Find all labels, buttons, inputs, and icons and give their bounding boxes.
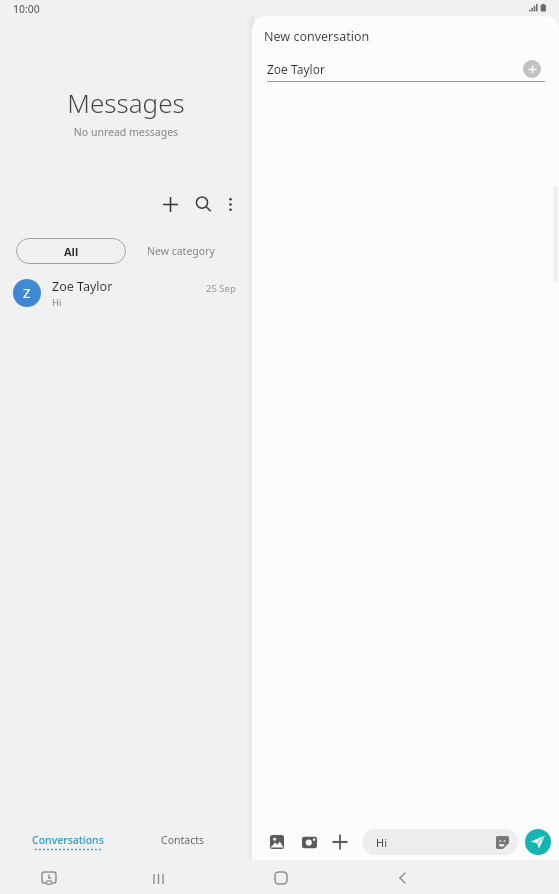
staticText: Messages (0, 85, 252, 120)
button[interactable]: Z (0, 273, 252, 313)
staticText: Hi (376, 835, 387, 850)
staticText: Zoe Taylor (52, 278, 113, 295)
staticText: Z (23, 284, 31, 302)
button[interactable]: Hi (362, 829, 518, 855)
staticText: Conversations (32, 833, 104, 847)
staticText: New conversation (264, 28, 370, 45)
staticText: 25 Sep (206, 282, 236, 295)
button[interactable]: Search (189, 190, 217, 218)
staticText: 10:00 (13, 2, 40, 16)
button[interactable]: Conversations (10, 826, 126, 860)
button[interactable]: More options (216, 190, 244, 218)
button[interactable]: New category (141, 238, 221, 264)
button[interactable]: Gallery (264, 829, 290, 855)
button[interactable]: Stickers (494, 834, 510, 850)
button[interactable]: All (16, 238, 126, 264)
button[interactable]: Add recipient (523, 60, 541, 78)
staticText: New category (147, 244, 215, 258)
button[interactable]: Contacts (136, 826, 230, 860)
staticText: All (64, 244, 79, 259)
button[interactable]: Camera (296, 829, 322, 855)
button[interactable]: Recents (144, 864, 172, 892)
button[interactable]: Send (525, 829, 551, 855)
staticText: Zoe Taylor (267, 61, 325, 77)
staticText: Hi (52, 296, 62, 309)
button[interactable]: Home (267, 864, 295, 892)
staticText: Contacts (161, 833, 205, 847)
staticText: No unread messages (0, 125, 252, 139)
button[interactable]: Attach (327, 829, 353, 855)
button[interactable]: New conversation (156, 190, 184, 218)
button[interactable]: Back (389, 864, 417, 892)
button[interactable]: Hide keyboard (35, 864, 63, 892)
